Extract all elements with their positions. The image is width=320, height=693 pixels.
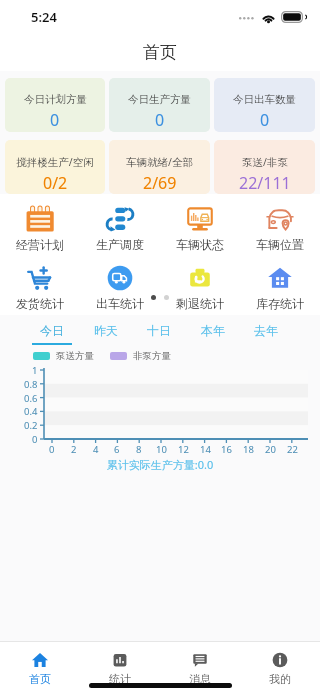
staticText: 0: [49, 443, 55, 456]
button[interactable]: 昨天: [86, 323, 126, 345]
staticText: 0.8: [24, 378, 38, 391]
staticText: 6: [114, 443, 120, 456]
staticText: 0/2: [43, 172, 68, 194]
staticText: 首页: [143, 42, 177, 63]
staticText: 剩退统计: [176, 296, 224, 311]
staticText: 14: [200, 443, 211, 456]
staticText: 22/111: [239, 172, 291, 194]
staticText: 我的: [269, 672, 291, 686]
button[interactable]: 消息: [160, 642, 240, 693]
button[interactable]: 剩退统计: [160, 264, 240, 311]
staticText: 消息: [189, 672, 211, 686]
staticText: 2: [71, 443, 77, 456]
button[interactable]: 今日生产方量: [109, 78, 210, 132]
staticText: 16: [221, 443, 232, 456]
staticText: 泵送/非泵: [242, 155, 288, 169]
staticText: 累计实际生产方量:0.0: [0, 457, 320, 472]
button[interactable]: 车辆状态: [160, 205, 240, 252]
staticText: 首页: [29, 672, 51, 686]
staticText: 10: [156, 443, 167, 456]
staticText: 生产调度: [96, 237, 144, 252]
staticText: 统计: [109, 672, 131, 686]
button[interactable]: 出车统计: [80, 264, 160, 311]
button[interactable]: 首页: [0, 642, 80, 693]
staticText: 0.6: [24, 392, 38, 405]
button[interactable]: 车辆就绪/全部: [109, 140, 210, 194]
button[interactable]: 今日: [32, 323, 72, 345]
button[interactable]: 经营计划: [0, 205, 80, 252]
button[interactable]: 库存统计: [240, 264, 320, 311]
button[interactable]: 发货统计: [0, 264, 80, 311]
staticText: 车辆就绪/全部: [126, 155, 193, 169]
button[interactable]: 我的: [240, 642, 320, 693]
button[interactable]: 生产调度: [80, 205, 160, 252]
button[interactable]: 今日出车数量: [214, 78, 315, 132]
staticText: 0: [32, 433, 38, 446]
staticText: 经营计划: [16, 237, 64, 252]
staticText: 1: [32, 364, 38, 377]
staticText: 0.2: [24, 419, 38, 432]
staticText: 4: [93, 443, 99, 456]
button[interactable]: 今日计划方量: [5, 78, 105, 132]
staticText: 18: [243, 443, 254, 456]
staticText: 5:24: [31, 8, 57, 26]
staticText: 泵送方量: [56, 350, 94, 362]
staticText: 去年: [254, 323, 278, 338]
staticText: 0: [260, 109, 270, 131]
staticText: 今日出车数量: [233, 93, 296, 106]
staticText: 今日生产方量: [128, 93, 191, 106]
staticText: 昨天: [94, 323, 118, 338]
button[interactable]: 搅拌楼生产/空闲: [5, 140, 105, 194]
staticText: 库存统计: [256, 296, 304, 311]
button[interactable]: 车辆位置: [240, 205, 320, 252]
staticText: 0: [50, 109, 60, 131]
staticText: 车辆状态: [176, 237, 224, 252]
staticText: 2/69: [143, 172, 177, 194]
button[interactable]: 去年: [246, 323, 286, 345]
staticText: 搅拌楼生产/空闲: [16, 155, 94, 169]
button[interactable]: 十日: [139, 323, 179, 345]
staticText: 12: [178, 443, 189, 456]
staticText: 发货统计: [16, 296, 64, 311]
staticText: 车辆位置: [256, 237, 304, 252]
button[interactable]: 统计: [80, 642, 160, 693]
staticText: 本年: [201, 323, 225, 338]
staticText: 出车统计: [96, 296, 144, 311]
staticText: 0.4: [24, 405, 38, 418]
staticText: 0: [155, 109, 165, 131]
staticText: 非泵方量: [133, 350, 171, 362]
staticText: 8: [136, 443, 142, 456]
button[interactable]: 泵送/非泵: [214, 140, 315, 194]
staticText: 22: [287, 443, 298, 456]
staticText: 20: [265, 443, 276, 456]
staticText: 今日计划方量: [24, 93, 87, 106]
staticText: 今日: [40, 323, 64, 338]
button[interactable]: 本年: [193, 323, 233, 345]
staticText: 十日: [147, 323, 171, 338]
